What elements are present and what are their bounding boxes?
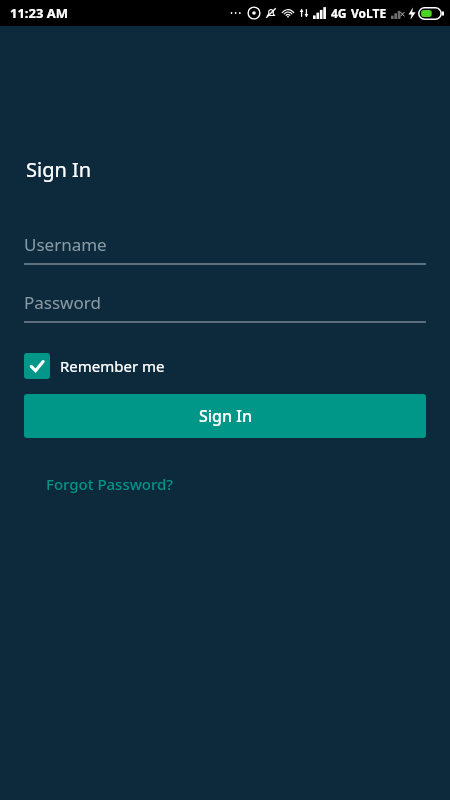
button[interactable]: Remember me — [24, 353, 165, 379]
staticText: 11:23 AM — [10, 4, 69, 22]
staticText: Sign In — [26, 156, 92, 183]
staticText: Sign In — [199, 405, 252, 427]
staticText: VoLTE — [351, 5, 387, 21]
button[interactable]: Password — [24, 289, 426, 315]
staticText: Forgot Password? — [46, 474, 174, 494]
staticText: Password — [24, 291, 101, 314]
button[interactable]: Forgot Password? — [46, 474, 174, 494]
button[interactable]: Username — [24, 231, 426, 257]
button[interactable]: Sign In — [24, 394, 426, 438]
staticText: Remember me — [60, 356, 165, 376]
staticText: 4G — [331, 5, 347, 21]
staticText: Username — [24, 233, 107, 256]
